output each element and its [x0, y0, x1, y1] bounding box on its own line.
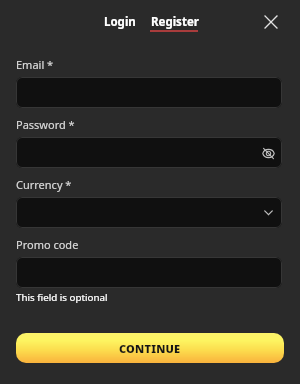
staticText: Email *: [16, 57, 54, 72]
staticText: Currency *: [16, 177, 72, 192]
button[interactable]: Select currency: [259, 204, 277, 222]
staticText: This field is optional: [16, 291, 108, 304]
button[interactable]: Show password: [259, 144, 277, 162]
button[interactable]: CONTINUE: [16, 333, 284, 363]
button[interactable]: [16, 257, 282, 288]
staticText: Register: [151, 14, 199, 30]
staticText: Login: [104, 14, 136, 30]
button[interactable]: Register: [145, 10, 205, 34]
staticText: Password *: [16, 117, 75, 132]
button[interactable]: Close: [257, 8, 285, 36]
button[interactable]: [16, 77, 282, 108]
button[interactable]: Select currency: [16, 197, 282, 228]
staticText: Promo code: [16, 237, 79, 252]
button[interactable]: Login: [98, 10, 142, 34]
staticText: CONTINUE: [119, 341, 181, 356]
button[interactable]: Show password: [16, 137, 282, 168]
